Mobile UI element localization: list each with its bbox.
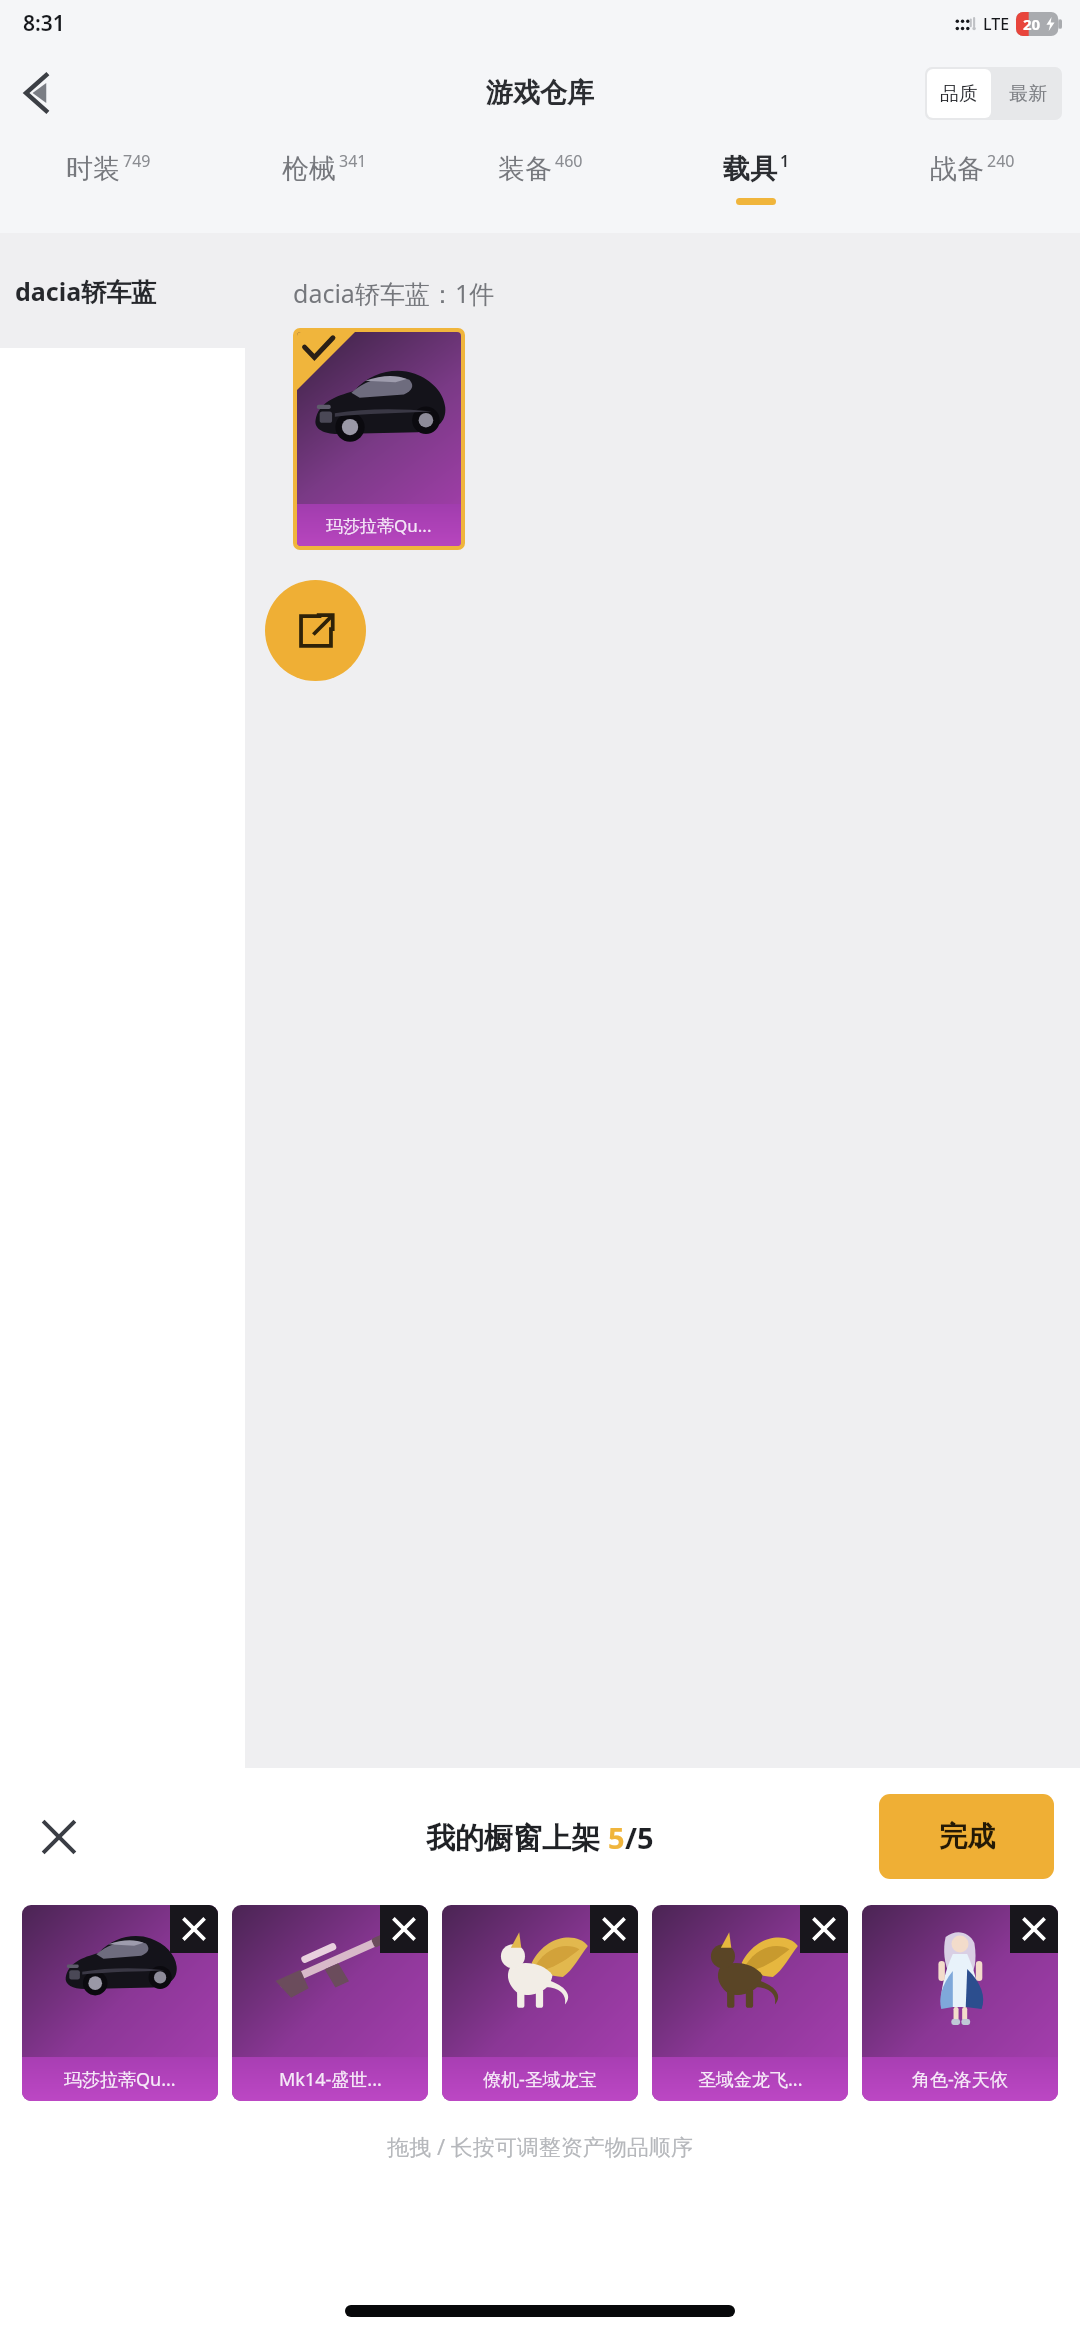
button[interactable]: Remove <box>590 1905 638 1953</box>
staticText: 战备 <box>930 152 984 186</box>
staticText: 品质 <box>940 82 978 106</box>
staticText: 460 <box>555 150 583 172</box>
button[interactable]: 载具 <box>648 138 864 233</box>
button[interactable]: Remove <box>170 1905 218 1953</box>
button[interactable]: Remove <box>1010 1905 1058 1953</box>
staticText: 时装 <box>66 152 120 186</box>
staticText: 玛莎拉蒂Qu... <box>64 2067 176 2092</box>
staticText: 我的橱窗上架 <box>426 1817 608 1857</box>
button[interactable]: 完成 <box>879 1794 1054 1879</box>
staticText: 8:31 <box>23 9 65 38</box>
staticText: dacia轿车蓝：1件 <box>293 276 495 310</box>
button[interactable]: 战备 <box>864 138 1080 233</box>
staticText: 僚机-圣域龙宝 <box>483 2067 597 2092</box>
staticText: dacia轿车蓝 <box>15 274 157 308</box>
button[interactable]: 圣域金龙飞... <box>652 1905 848 2101</box>
button[interactable]: 玛莎拉蒂Qu... <box>293 328 465 550</box>
button[interactable]: 时装 <box>0 138 216 233</box>
staticText: 完成 <box>939 1819 995 1854</box>
button[interactable]: Open external <box>265 580 366 681</box>
button[interactable]: 装备 <box>432 138 648 233</box>
staticText: 20 <box>1023 14 1041 34</box>
staticText: 载具 <box>723 152 777 186</box>
button[interactable]: 枪械 <box>216 138 432 233</box>
staticText: LTE <box>983 13 1010 35</box>
staticText: 玛莎拉蒂Qu... <box>326 514 432 537</box>
staticText: 749 <box>123 150 151 172</box>
staticText: Mk14-盛世... <box>279 2067 382 2092</box>
staticText: 游戏仓库 <box>486 76 594 110</box>
staticText: 最新 <box>1009 82 1047 106</box>
button[interactable]: Back <box>8 64 66 122</box>
staticText: 拖拽 / 长按可调整资产物品顺序 <box>0 2131 1080 2161</box>
button[interactable]: Close <box>28 1806 90 1868</box>
staticText: 装备 <box>498 152 552 186</box>
staticText: 240 <box>987 150 1015 172</box>
button[interactable]: 品质 <box>927 69 991 118</box>
staticText: 枪械 <box>282 152 336 186</box>
button[interactable]: dacia轿车蓝 <box>0 233 245 348</box>
staticText: 341 <box>339 150 367 172</box>
staticText: /5 <box>625 1818 654 1857</box>
staticText: 1 <box>780 150 790 172</box>
button[interactable]: Remove <box>800 1905 848 1953</box>
staticText: 角色-洛天依 <box>912 2067 1008 2092</box>
staticText: 5 <box>608 1818 625 1857</box>
staticText: 圣域金龙飞... <box>698 2067 803 2092</box>
button[interactable]: Mk14-盛世... <box>232 1905 428 2101</box>
button[interactable]: 僚机-圣域龙宝 <box>442 1905 638 2101</box>
button[interactable]: Remove <box>380 1905 428 1953</box>
button[interactable]: 玛莎拉蒂Qu... <box>22 1905 218 2101</box>
button[interactable]: 最新 <box>993 67 1062 120</box>
button[interactable]: 角色-洛天依 <box>862 1905 1058 2101</box>
